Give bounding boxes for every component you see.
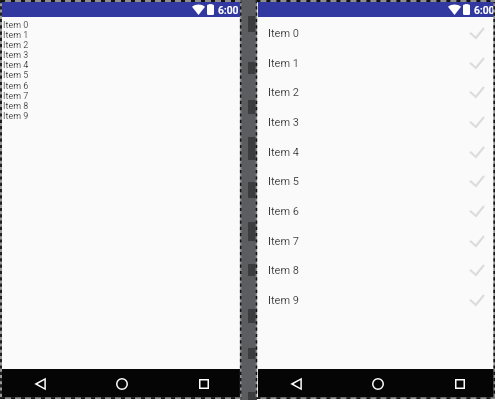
button[interactable]: Item 2 bbox=[258, 81, 495, 103]
staticText: Item 9 bbox=[3, 111, 29, 121]
button[interactable]: Recents bbox=[449, 373, 471, 395]
button[interactable]: Item 9 bbox=[258, 289, 495, 311]
button[interactable]: Item 9 bbox=[2, 111, 240, 121]
button[interactable]: Item 7 bbox=[258, 230, 495, 252]
staticText: Item 5 bbox=[3, 70, 29, 80]
staticText: Item 8 bbox=[3, 101, 29, 111]
button[interactable]: Item 8 bbox=[2, 101, 240, 111]
staticText: Item 7 bbox=[268, 235, 299, 248]
button[interactable]: Item 3 bbox=[258, 111, 495, 133]
staticText: Item 8 bbox=[268, 264, 299, 277]
button[interactable]: Item 5 bbox=[258, 170, 495, 192]
staticText: Item 6 bbox=[3, 81, 29, 91]
button[interactable]: Item 1 bbox=[258, 52, 495, 74]
staticText: Item 9 bbox=[268, 294, 299, 307]
button[interactable]: Item 3 bbox=[2, 50, 240, 60]
staticText: Item 2 bbox=[268, 86, 299, 99]
staticText: 6:00 bbox=[474, 4, 495, 16]
staticText: Item 1 bbox=[268, 57, 299, 70]
staticText: Item 7 bbox=[3, 91, 29, 101]
staticText: Item 3 bbox=[268, 116, 299, 129]
staticText: Item 5 bbox=[268, 175, 299, 188]
button[interactable]: Item 6 bbox=[258, 200, 495, 222]
button[interactable]: Item 0 bbox=[2, 20, 240, 30]
staticText: Item 2 bbox=[3, 40, 29, 50]
staticText: Item 0 bbox=[3, 20, 29, 30]
button[interactable]: Item 6 bbox=[2, 81, 240, 91]
button[interactable]: Item 5 bbox=[2, 70, 240, 80]
button[interactable]: Home bbox=[367, 373, 389, 395]
staticText: Item 6 bbox=[268, 205, 299, 218]
staticText: Item 0 bbox=[268, 27, 299, 40]
button[interactable]: Home bbox=[111, 373, 133, 395]
button[interactable]: Item 2 bbox=[2, 40, 240, 50]
staticText: 6:00 bbox=[218, 4, 239, 16]
button[interactable]: Item 0 bbox=[258, 22, 495, 44]
button[interactable]: Item 1 bbox=[2, 30, 240, 40]
staticText: Item 4 bbox=[268, 146, 299, 159]
staticText: Item 1 bbox=[3, 30, 29, 40]
button[interactable]: Item 4 bbox=[2, 60, 240, 70]
button[interactable]: Item 8 bbox=[258, 259, 495, 281]
staticText: Item 4 bbox=[3, 60, 29, 70]
button[interactable]: Back bbox=[285, 373, 307, 395]
button[interactable]: Recents bbox=[193, 373, 215, 395]
button[interactable]: Item 4 bbox=[258, 141, 495, 163]
staticText: Item 3 bbox=[3, 50, 29, 60]
button[interactable]: Item 7 bbox=[2, 91, 240, 101]
button[interactable]: Back bbox=[29, 373, 51, 395]
